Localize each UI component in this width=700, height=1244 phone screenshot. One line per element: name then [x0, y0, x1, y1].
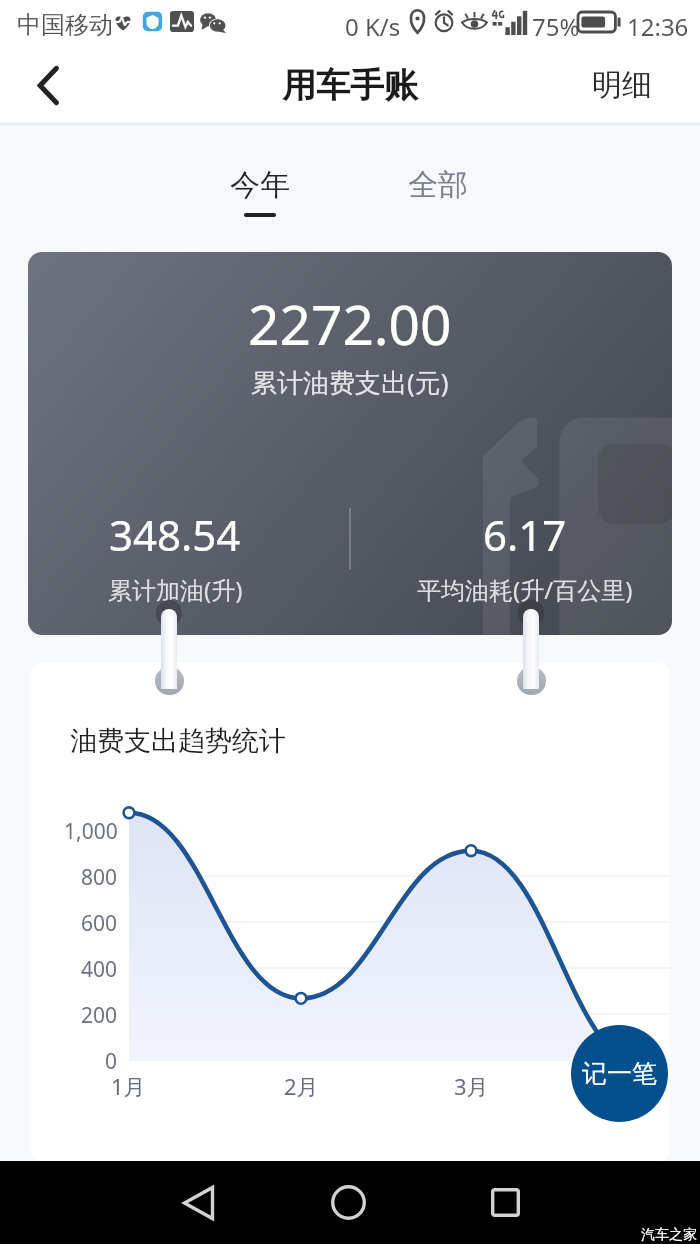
button[interactable]: Back — [163, 1161, 233, 1244]
button[interactable]: 今年 — [210, 162, 310, 221]
button[interactable]: 油费支出趋势统计 — [30, 663, 670, 1161]
staticText: 用车手账 — [282, 64, 418, 107]
staticText: 348.54 — [109, 506, 241, 563]
staticText: 记一笔 — [582, 1058, 657, 1089]
staticText: 0 — [105, 1047, 118, 1076]
staticText: 明细 — [592, 66, 652, 104]
staticText: 3月 — [454, 1071, 489, 1101]
button[interactable]: Back — [8, 45, 86, 125]
staticText: 200 — [81, 1001, 118, 1030]
staticText: 75% — [532, 10, 580, 43]
staticText: 2272.00 — [248, 286, 452, 361]
staticText: 汽车之家 — [641, 1226, 697, 1244]
staticText: 中国移动 — [17, 10, 113, 40]
staticText: 12:36 — [627, 10, 689, 43]
button[interactable]: 2272.00 — [28, 252, 672, 635]
staticText: 2月 — [284, 1071, 319, 1101]
staticText: 油费支出趋势统计 — [70, 724, 286, 758]
button[interactable]: 明细 — [570, 50, 700, 120]
staticText: 400 — [81, 955, 118, 984]
staticText: 0 K/s — [345, 10, 401, 43]
staticText: 平均油耗(升/百公里) — [417, 573, 633, 606]
button[interactable]: 全部 — [388, 162, 488, 221]
staticText: 累计油费支出(元) — [251, 364, 449, 400]
staticText: 今年 — [230, 166, 290, 204]
button[interactable]: Recent apps — [470, 1161, 540, 1244]
staticText: 600 — [81, 909, 118, 938]
staticText: 累计加油(升) — [108, 573, 243, 606]
button[interactable]: Home — [313, 1161, 383, 1244]
staticText: 800 — [81, 863, 118, 892]
staticText: 全部 — [408, 166, 468, 204]
staticText: 1月 — [111, 1071, 146, 1101]
staticText: 6.17 — [483, 506, 567, 563]
staticText: 1,000 — [64, 817, 118, 846]
button[interactable]: 记一笔 — [571, 1025, 668, 1122]
